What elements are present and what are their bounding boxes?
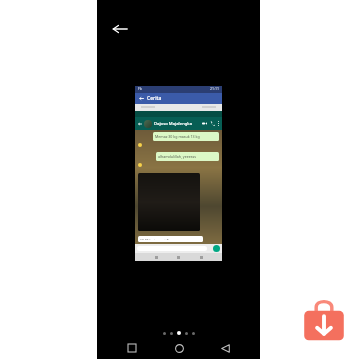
button[interactable]: Recents: [121, 337, 143, 359]
staticText: 21:11: [210, 86, 219, 91]
staticText: 19,85 kg tempat Tangerang: [140, 238, 184, 240]
staticText: Fb: [138, 86, 142, 91]
staticText: alhamdulillah, yeeesss: [158, 154, 196, 159]
button[interactable]: Download: [297, 293, 351, 347]
button[interactable]: Back: [214, 337, 236, 359]
staticText: Cerita: [147, 95, 162, 102]
staticText: Memaz 30 kg masuk 13 kg: [155, 134, 200, 139]
staticText: Dajoso Majalengka: [154, 121, 202, 127]
button[interactable]: Home: [168, 337, 190, 359]
button[interactable]: Back: [103, 12, 137, 46]
